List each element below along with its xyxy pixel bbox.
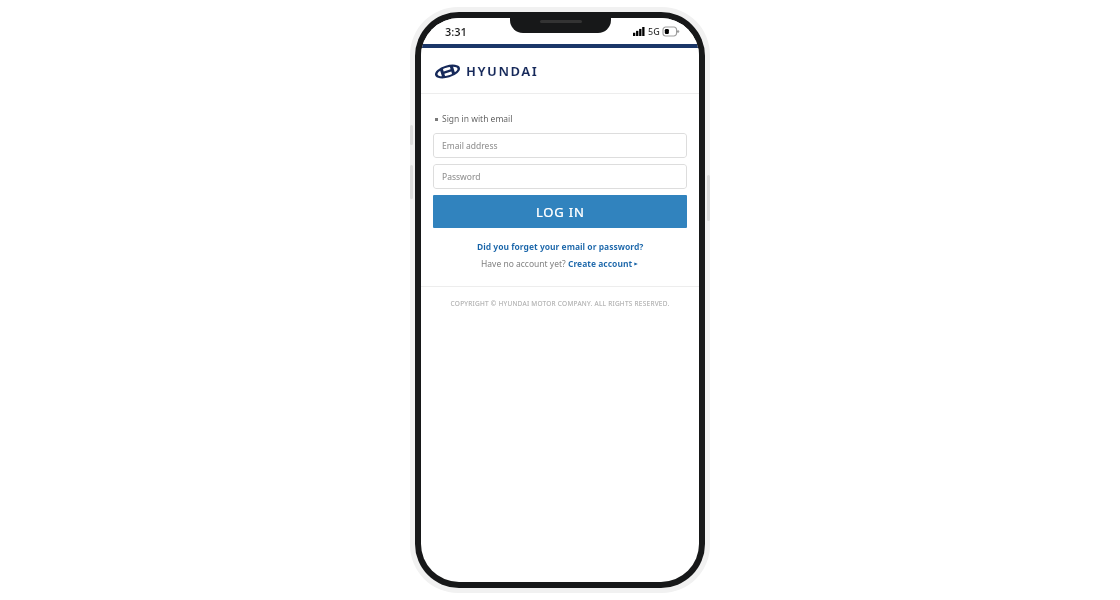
staticText: Create account: [568, 258, 633, 270]
staticText: HYUNDAI: [466, 62, 539, 80]
button[interactable]: Password: [433, 164, 687, 189]
staticText: Email address: [442, 140, 498, 152]
button[interactable]: Create account: [568, 258, 639, 270]
button[interactable]: Email address: [433, 133, 687, 158]
staticText: Have no account yet?: [481, 258, 568, 270]
staticText: 3:31: [445, 24, 467, 39]
staticText: Password: [442, 171, 481, 183]
staticText: Did you forget your email or password?: [477, 241, 644, 253]
staticText: COPYRIGHT © HYUNDAI MOTOR COMPANY. ALL R…: [447, 299, 673, 308]
button[interactable]: Did you forget your email or password?: [421, 241, 699, 253]
staticText: LOG IN: [536, 203, 585, 221]
button[interactable]: LOG IN: [433, 195, 687, 228]
staticText: Sign in with email: [442, 113, 513, 125]
staticText: 5G: [648, 25, 660, 37]
